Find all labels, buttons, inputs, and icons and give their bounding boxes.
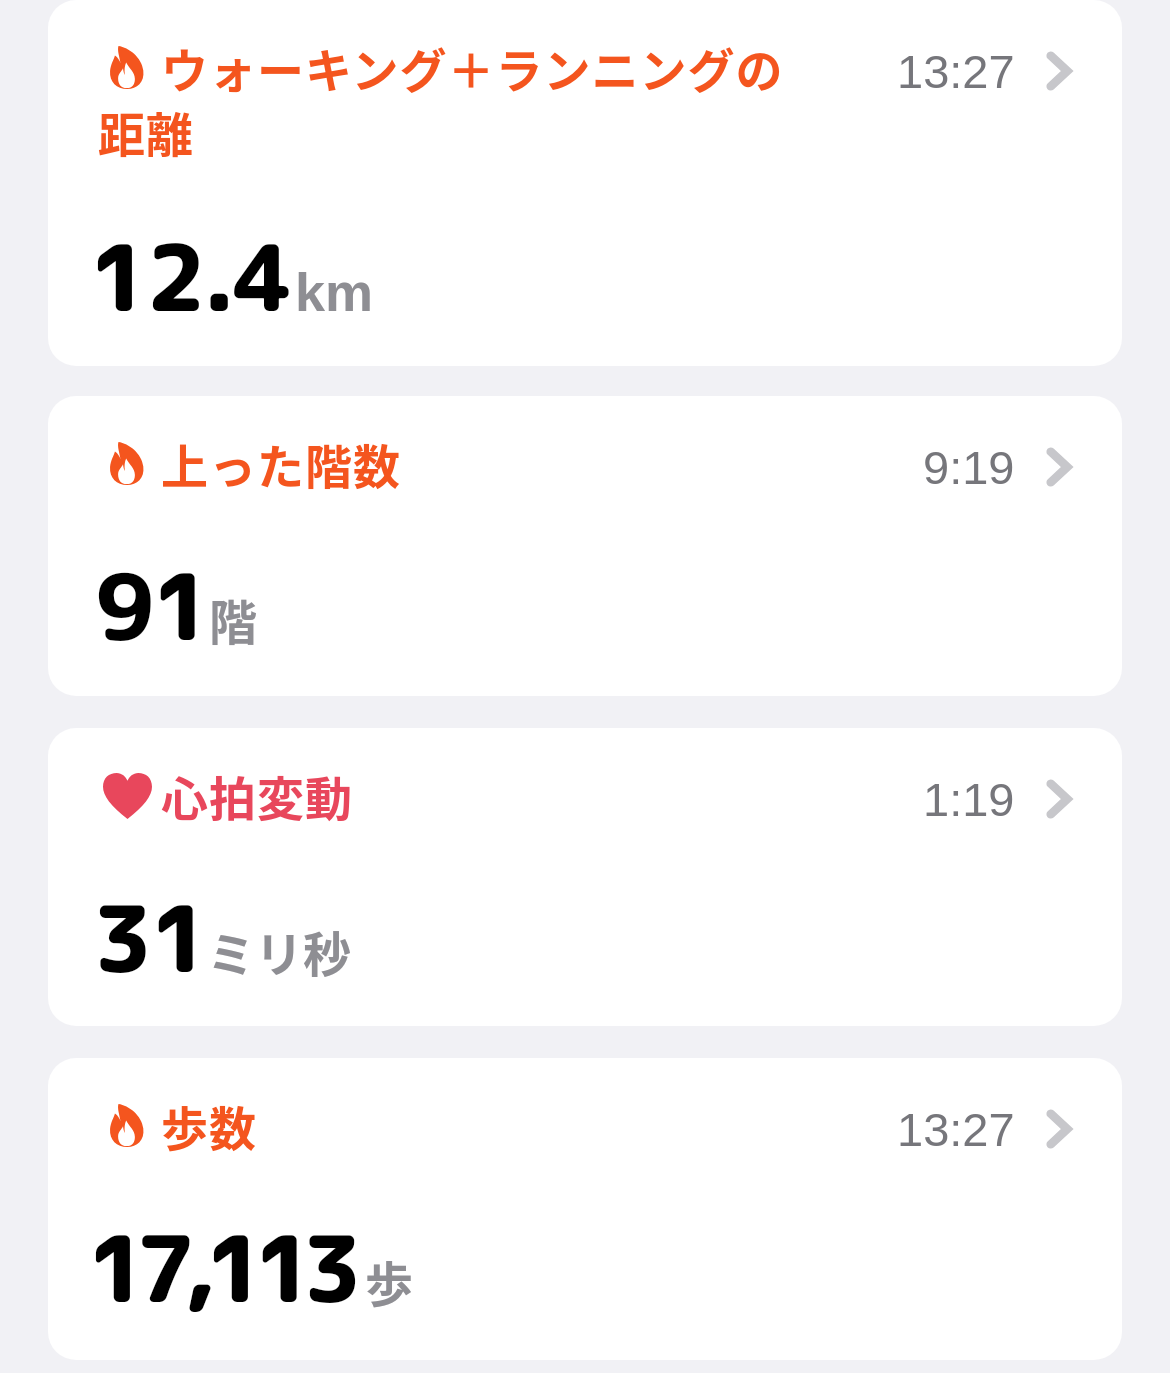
button[interactable]: *心拍変動 xyxy=(48,728,1122,1026)
staticText: 13:27 xyxy=(897,45,1015,98)
button[interactable]: *歩数 xyxy=(48,1058,1122,1360)
staticText: *歩数 xyxy=(98,1091,498,1159)
staticText: *ウォーキング＋ランニングの距離 xyxy=(98,33,798,166)
staticText: 歩 xyxy=(365,1246,414,1316)
button[interactable]: *上った階数 xyxy=(48,396,1122,696)
staticText: 17,113 xyxy=(87,1203,352,1331)
staticText: 31 xyxy=(93,873,207,1001)
staticText: *心拍変動 xyxy=(98,761,498,829)
staticText: 91 xyxy=(95,541,209,669)
staticText: 1:19 xyxy=(923,773,1015,826)
button[interactable]: *ウォーキング＋ランニングの距離 xyxy=(48,0,1122,366)
staticText: km xyxy=(295,262,374,322)
staticText: 12.4 xyxy=(89,212,290,340)
button[interactable]: Show 上った階数 details xyxy=(1035,429,1079,487)
button[interactable]: Show 心拍変動 details xyxy=(1035,761,1079,819)
staticText: 階 xyxy=(209,584,258,654)
staticText: 9:19 xyxy=(923,441,1015,494)
staticText: 13:27 xyxy=(897,1103,1015,1156)
button[interactable]: Show ウォーキング＋ランニングの距離 details xyxy=(1035,33,1079,91)
button[interactable]: Show 歩数 details xyxy=(1035,1091,1079,1149)
staticText: ミリ秒 xyxy=(207,916,352,986)
staticText: *上った階数 xyxy=(98,429,498,497)
